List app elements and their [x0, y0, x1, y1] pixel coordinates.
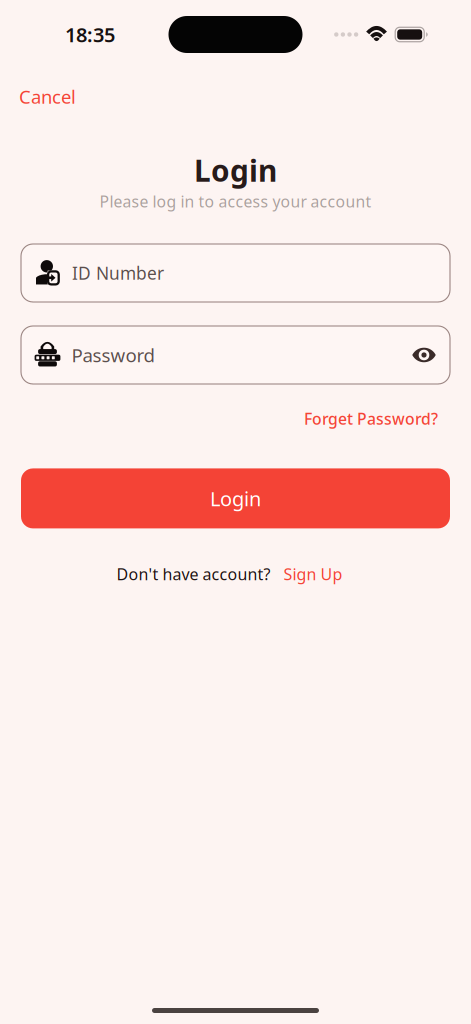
staticText: Forget Password? [304, 408, 438, 429]
staticText: Login [210, 485, 261, 512]
staticText: Sign Up [283, 563, 342, 585]
staticText: Don't have account? [116, 563, 270, 585]
staticText: Login [194, 150, 277, 191]
staticText: Cancel [19, 84, 76, 109]
button[interactable]: Sign Up [270, 563, 354, 585]
button[interactable]: Show password [402, 333, 446, 377]
staticText: ID Number [72, 261, 164, 284]
button[interactable]: Cancel [0, 75, 95, 118]
button[interactable]: Login [21, 468, 450, 528]
button[interactable]: Forget Password? [304, 404, 438, 433]
staticText: Password [71, 343, 154, 367]
button[interactable]: ID Number [21, 244, 450, 302]
staticText: Please log in to access your account [99, 191, 371, 212]
staticText: 18:35 [65, 21, 115, 48]
